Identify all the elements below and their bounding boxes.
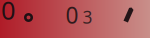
staticText: 3 xyxy=(82,5,92,28)
staticText: 0 xyxy=(1,0,15,27)
staticText: 0 xyxy=(65,0,78,30)
